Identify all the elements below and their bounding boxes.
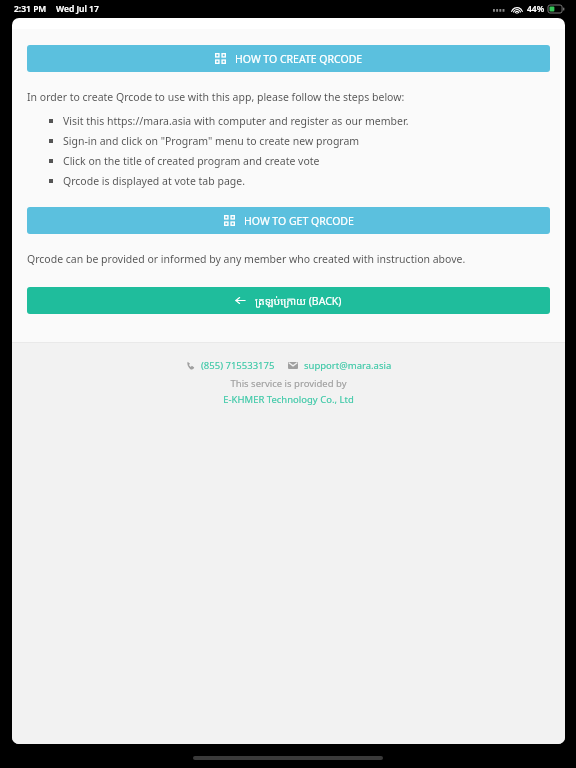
staticText: Qrcode is displayed at vote tab page. bbox=[63, 174, 245, 188]
button[interactable]: ត្រឡប់ក្រោយ (BACK) bbox=[27, 287, 550, 314]
other: Phone bbox=[186, 361, 195, 370]
staticText: Click on the title of created program an… bbox=[63, 154, 320, 168]
staticText: This service is provided by bbox=[230, 377, 347, 390]
staticText: support@mara.asia bbox=[304, 359, 392, 372]
staticText: Qrcode can be provided or informed by an… bbox=[27, 252, 466, 266]
staticText: 44% bbox=[527, 3, 545, 15]
staticText: Visit this https://mara.asia with comput… bbox=[63, 114, 409, 128]
other: Email bbox=[288, 362, 298, 369]
staticText: HOW TO CREATE QRCODE bbox=[235, 52, 363, 66]
staticText: In order to create Qrcode to use with th… bbox=[27, 90, 405, 104]
staticText: E-KHMER Technology Co., Ltd bbox=[223, 393, 354, 406]
staticText: Sign-in and click on "Program" menu to c… bbox=[63, 134, 360, 148]
staticText: HOW TO GET QRCODE bbox=[244, 214, 354, 228]
staticText: ត្រឡប់ក្រោយ (BACK) bbox=[255, 294, 342, 308]
staticText: Wed Jul 17 bbox=[56, 3, 99, 15]
staticText: 2:31 PM bbox=[14, 3, 47, 15]
staticText: (855) 715533175 bbox=[201, 359, 275, 372]
button[interactable]: HOW TO GET QRCODE bbox=[27, 207, 550, 234]
button[interactable]: HOW TO CREATE QRCODE bbox=[27, 45, 550, 72]
